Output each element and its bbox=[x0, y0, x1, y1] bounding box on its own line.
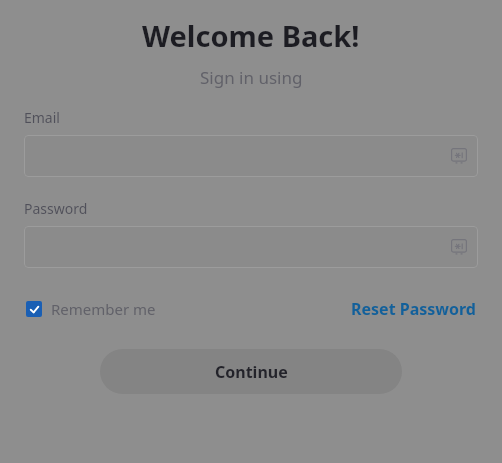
staticText: Remember me bbox=[51, 299, 156, 319]
staticText: Continue bbox=[215, 361, 288, 383]
button[interactable]: Remember me bbox=[24, 295, 158, 323]
staticText: Welcome Back! bbox=[142, 16, 360, 55]
staticText: Sign in using bbox=[200, 66, 303, 89]
button[interactable]: Email input bbox=[24, 135, 478, 177]
staticText: Reset Password bbox=[351, 298, 476, 320]
button[interactable]: Reset Password bbox=[349, 294, 478, 324]
button[interactable]: Continue bbox=[100, 349, 402, 394]
button[interactable]: Password input bbox=[24, 226, 478, 268]
button[interactable]: Autofill bbox=[450, 238, 468, 256]
button[interactable]: Autofill bbox=[450, 147, 468, 165]
staticText: Password bbox=[24, 199, 88, 218]
staticText: Email bbox=[24, 108, 60, 127]
